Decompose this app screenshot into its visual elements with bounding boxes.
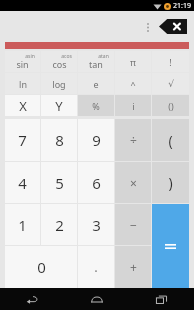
button[interactable]: log — [41, 73, 77, 94]
button[interactable]: π — [115, 51, 151, 72]
staticText: 8 — [55, 130, 64, 150]
button[interactable]: 5 — [41, 162, 77, 203]
staticText: √ — [168, 79, 174, 89]
staticText: 6 — [92, 173, 101, 193]
button[interactable]: Recent apps — [129, 288, 194, 310]
staticText: 0 — [37, 257, 46, 277]
staticText: i — [132, 100, 135, 112]
button[interactable]: acos — [41, 51, 77, 72]
staticText: e — [93, 78, 99, 90]
staticText: atan — [98, 53, 109, 60]
staticText: − — [130, 217, 137, 233]
staticText: π — [130, 56, 136, 68]
staticText: ÷ — [130, 132, 137, 148]
button[interactable]: Delete — [159, 19, 187, 34]
button[interactable]: ! — [152, 51, 189, 72]
button[interactable]: atan — [78, 51, 114, 72]
button[interactable]: More options — [140, 14, 156, 40]
button[interactable]: Home — [64, 288, 129, 310]
staticText: × — [130, 175, 137, 191]
button[interactable]: ln — [5, 73, 40, 94]
button[interactable]: √ — [152, 73, 189, 94]
staticText: % — [92, 100, 100, 112]
staticText: Y — [55, 97, 63, 115]
staticText: log — [52, 78, 66, 90]
button[interactable]: Y — [41, 95, 77, 116]
staticText: cos — [52, 58, 67, 70]
button[interactable]: 3 — [78, 204, 114, 245]
button[interactable]: asin — [5, 51, 40, 72]
staticText: 1 — [18, 215, 27, 235]
staticText: 7 — [18, 130, 27, 150]
staticText: ( — [168, 131, 173, 150]
staticText: ln — [19, 78, 27, 90]
staticText: 5 — [55, 173, 64, 193]
button[interactable]: + — [115, 246, 151, 288]
button[interactable]: () — [152, 95, 189, 116]
button[interactable]: Equals — [152, 204, 189, 288]
button[interactable]: Back — [0, 288, 64, 310]
button[interactable]: 1 — [5, 204, 40, 245]
staticText: asin — [25, 53, 35, 60]
staticText: () — [168, 100, 174, 112]
button[interactable]: i — [115, 95, 151, 116]
staticText: ) — [168, 173, 173, 192]
button[interactable]: 9 — [78, 119, 114, 161]
button[interactable]: ( — [152, 119, 189, 161]
staticText: 3 — [92, 215, 101, 235]
staticText: 9 — [92, 130, 101, 150]
staticText: 2 — [55, 215, 64, 235]
button[interactable]: ) — [152, 162, 189, 203]
button[interactable]: 4 — [5, 162, 40, 203]
button[interactable]: 7 — [5, 119, 40, 161]
button[interactable]: ÷ — [115, 119, 151, 161]
button[interactable]: × — [115, 162, 151, 203]
staticText: sin — [16, 58, 29, 70]
staticText: X — [19, 97, 27, 115]
button[interactable]: 8 — [41, 119, 77, 161]
staticText: ! — [169, 56, 172, 68]
staticText: tan — [89, 58, 103, 70]
button[interactable]: 2 — [41, 204, 77, 245]
button[interactable]: 6 — [78, 162, 114, 203]
staticText: acos — [61, 53, 72, 60]
button[interactable]: e — [78, 73, 114, 94]
button[interactable]: 0 — [5, 246, 77, 288]
button[interactable]: ^ — [115, 73, 151, 94]
staticText: 21:19 — [173, 1, 191, 11]
button[interactable]: X — [5, 95, 40, 116]
button[interactable]: − — [115, 204, 151, 245]
staticText: + — [130, 259, 137, 275]
button[interactable]: . — [78, 246, 114, 288]
button[interactable]: % — [78, 95, 114, 116]
staticText: 4 — [18, 173, 27, 193]
staticText: . — [94, 258, 98, 276]
staticText: ^ — [130, 78, 136, 90]
